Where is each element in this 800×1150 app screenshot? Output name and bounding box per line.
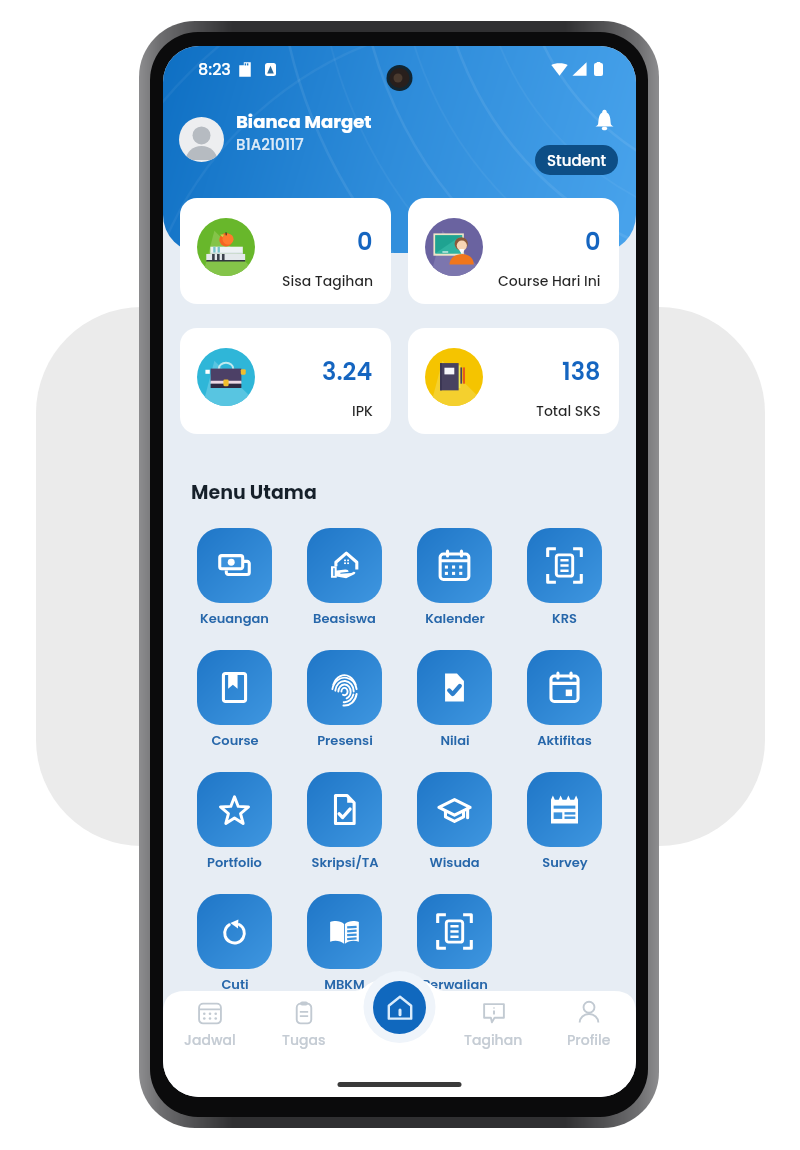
staticText: Portfolio (207, 853, 262, 871)
staticText: Student (547, 150, 607, 171)
button[interactable]: Profile (541, 1000, 636, 1050)
staticText: Perwalian (422, 975, 488, 993)
staticText: 0 (585, 225, 601, 259)
staticText: Bianca Marget (236, 109, 372, 134)
staticText: Course (211, 731, 259, 749)
staticText: 8:23 (198, 58, 231, 80)
staticText: Presensi (317, 731, 373, 749)
button[interactable]: Cuti (197, 894, 272, 993)
staticText: Survey (542, 853, 588, 871)
staticText: B1A210117 (236, 134, 304, 155)
staticText: MBKM (324, 975, 365, 993)
button[interactable]: 0 (408, 198, 619, 304)
button[interactable]: Presensi (307, 650, 382, 749)
staticText: 138 (562, 355, 601, 389)
button[interactable]: Wisuda (417, 772, 492, 871)
button[interactable]: Notifications (595, 109, 614, 131)
button[interactable]: Course (197, 650, 272, 749)
staticText: 0 (357, 225, 373, 259)
button[interactable]: Skripsi/TA (307, 772, 382, 871)
staticText: Beasiswa (313, 609, 376, 627)
button[interactable]: Jadwal (163, 1000, 257, 1050)
button[interactable]: Aktifitas (527, 650, 602, 749)
staticText: Tugas (282, 1030, 326, 1050)
button[interactable]: 138 (408, 328, 619, 434)
button[interactable]: Tagihan (446, 1000, 541, 1050)
staticText: Kalender (425, 609, 485, 627)
staticText: 3.24 (322, 355, 373, 389)
button[interactable]: Survey (527, 772, 602, 871)
staticText: Total SKS (536, 401, 601, 421)
staticText: Nilai (440, 731, 470, 749)
staticText: Skripsi/TA (311, 853, 379, 871)
staticText: Keuangan (200, 609, 269, 627)
button[interactable]: Tugas (257, 1000, 351, 1050)
staticText: Tagihan (464, 1030, 523, 1050)
staticText: Aktifitas (537, 731, 592, 749)
button[interactable]: Profile photo (179, 117, 224, 162)
button[interactable]: Beasiswa (307, 528, 382, 627)
button[interactable]: Portfolio (197, 772, 272, 871)
button[interactable]: 0 (180, 198, 391, 304)
button[interactable]: MBKM (307, 894, 382, 993)
button[interactable]: 3.24 (180, 328, 391, 434)
button[interactable]: KRS (527, 528, 602, 627)
staticText: KRS (552, 609, 577, 627)
button[interactable]: Nilai (417, 650, 492, 749)
button[interactable]: Home (373, 981, 426, 1034)
staticText: Profile (567, 1030, 611, 1050)
staticText: Sisa Tagihan (282, 271, 373, 291)
staticText: Wisuda (429, 853, 480, 871)
staticText: Jadwal (184, 1030, 236, 1050)
button[interactable]: Keuangan (197, 528, 272, 627)
staticText: Menu Utama (191, 479, 317, 506)
staticText: Course Hari Ini (498, 271, 601, 291)
staticText: Cuti (221, 975, 249, 993)
staticText: IPK (352, 401, 373, 421)
button[interactable]: Perwalian (417, 894, 492, 993)
button[interactable]: Student (535, 145, 618, 175)
button[interactable]: Kalender (417, 528, 492, 627)
